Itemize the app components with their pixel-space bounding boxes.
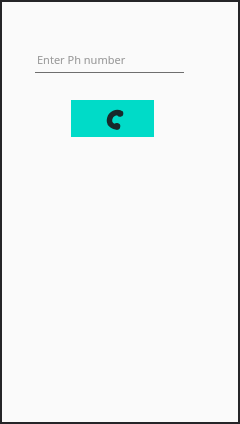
button[interactable]: Enter Ph number (35, 52, 184, 73)
staticText: Enter Ph number (37, 52, 126, 67)
button[interactable]: Call (71, 100, 154, 137)
